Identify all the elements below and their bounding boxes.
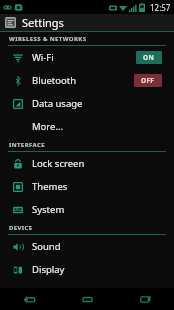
- staticText: Sound: [32, 240, 61, 253]
- button[interactable]: More...: [0, 115, 174, 138]
- button[interactable]: Bluetooth: [0, 69, 174, 92]
- staticText: OFF: [141, 76, 155, 85]
- staticText: Display: [32, 263, 65, 276]
- button[interactable]: Home: [58, 288, 116, 310]
- button[interactable]: OFF: [134, 74, 162, 87]
- staticText: Lock screen: [32, 157, 85, 170]
- staticText: Data usage: [32, 97, 83, 110]
- button[interactable]: Themes: [0, 175, 174, 198]
- staticText: Wi-Fi: [32, 51, 54, 64]
- button[interactable]: Display: [0, 258, 174, 281]
- staticText: Bluetooth: [32, 74, 77, 87]
- button[interactable]: Sound: [0, 235, 174, 258]
- staticText: 12:57: [150, 2, 171, 13]
- button[interactable]: Settings: [0, 14, 174, 31]
- staticText: INTERFACE: [9, 141, 45, 149]
- button[interactable]: Data usage: [0, 92, 174, 115]
- staticText: WIRELESS & NETWORKS: [9, 35, 87, 43]
- staticText: DEVICE: [9, 224, 33, 232]
- button[interactable]: Lock screen: [0, 152, 174, 175]
- staticText: Themes: [32, 180, 68, 193]
- staticText: System: [32, 203, 65, 216]
- button[interactable]: System: [0, 198, 174, 221]
- button[interactable]: ON: [136, 51, 162, 64]
- button[interactable]: Wi-Fi: [0, 46, 174, 69]
- staticText: More...: [32, 120, 64, 133]
- staticText: ON: [143, 53, 155, 62]
- button[interactable]: Back: [0, 288, 58, 310]
- staticText: Settings: [22, 15, 64, 30]
- button[interactable]: Recent apps: [116, 288, 174, 310]
